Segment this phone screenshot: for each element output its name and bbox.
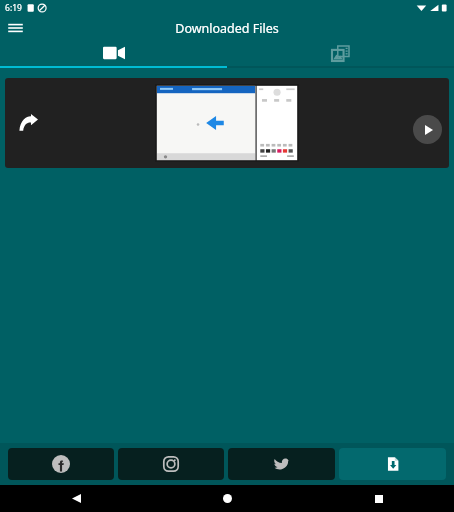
button[interactable]: Videos tab <box>0 40 227 66</box>
button[interactable]: Images tab <box>227 40 454 66</box>
button[interactable]: Instagram <box>118 448 224 480</box>
button[interactable]: Back <box>0 485 152 512</box>
button[interactable]: Play <box>413 115 442 144</box>
button[interactable]: Twitter <box>228 448 335 480</box>
button[interactable]: Share <box>5 78 449 168</box>
staticText: Downloaded Files <box>175 20 279 37</box>
button[interactable]: Share <box>13 107 43 137</box>
button[interactable]: Downloads <box>339 448 446 480</box>
button[interactable]: Facebook <box>8 448 114 480</box>
button[interactable]: Open navigation menu <box>6 19 24 37</box>
button[interactable]: Recent apps <box>303 485 454 512</box>
staticText: 6:19 <box>5 2 22 14</box>
button[interactable]: Home <box>152 485 303 512</box>
